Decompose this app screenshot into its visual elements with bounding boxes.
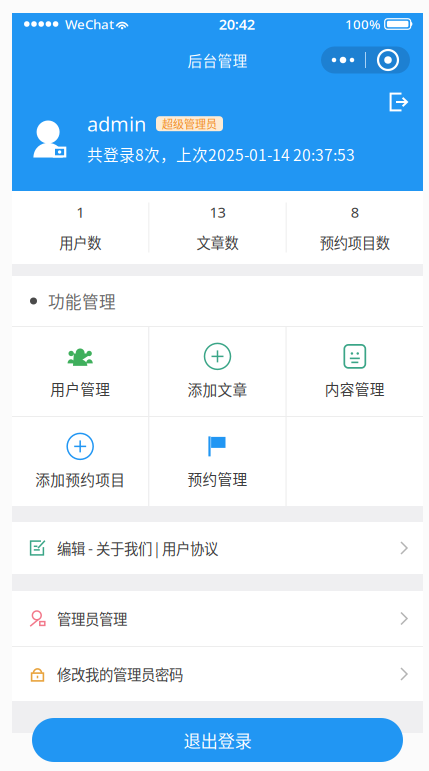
staticText: 8 xyxy=(351,202,359,222)
staticText: 用户管理 xyxy=(50,378,110,399)
button[interactable]: 添加文章 xyxy=(149,327,286,416)
staticText: 编辑 - 关于我们 | 用户协议 xyxy=(57,538,218,558)
staticText: 20:42 xyxy=(219,14,255,34)
button[interactable]: 内容管理 xyxy=(287,327,423,416)
staticText: 用户数 xyxy=(59,232,101,253)
staticText: WeChat xyxy=(65,15,114,33)
button[interactable]: 退出登录 xyxy=(32,718,403,762)
staticText: 预约项目数 xyxy=(320,232,390,253)
staticText: 预约管理 xyxy=(187,468,247,489)
staticText: 退出登录 xyxy=(183,727,251,753)
button[interactable]: 编辑 - 关于我们 | 用户协议 xyxy=(12,522,423,574)
button[interactable]: 预约管理 xyxy=(149,417,286,506)
staticText: 共登录8次，上次2025-01-14 20:37:53 xyxy=(87,143,355,166)
button[interactable]: 退出登录 xyxy=(380,83,418,121)
button[interactable]: 菜单 xyxy=(321,46,410,73)
staticText: 13 xyxy=(209,202,225,222)
staticText: 后台管理 xyxy=(187,49,247,71)
staticText: 超级管理员 xyxy=(162,116,217,132)
staticText: 功能管理 xyxy=(48,289,116,313)
staticText: 内容管理 xyxy=(325,378,385,399)
button[interactable]: 用户管理 xyxy=(12,327,148,416)
staticText: admin xyxy=(87,110,146,137)
staticText: 100% xyxy=(345,15,380,33)
staticText: 管理员管理 xyxy=(57,608,127,629)
button[interactable]: 管理员管理 xyxy=(12,591,423,646)
button[interactable]: 添加预约项目 xyxy=(12,417,148,506)
button[interactable]: 修改我的管理员密码 xyxy=(12,647,423,701)
staticText: 修改我的管理员密码 xyxy=(57,664,183,684)
staticText: 文章数 xyxy=(196,232,238,253)
staticText: 添加预约项目 xyxy=(35,468,125,490)
staticText: 1 xyxy=(76,202,84,222)
staticText: 添加文章 xyxy=(187,378,247,400)
